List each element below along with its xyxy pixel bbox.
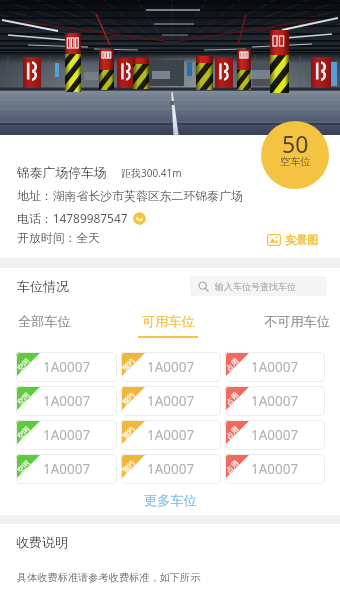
button[interactable]: 占用: [225, 352, 325, 382]
staticText: 1A0007: [147, 426, 195, 444]
button[interactable]: 预约: [121, 352, 221, 382]
button[interactable]: 预约: [121, 454, 221, 484]
staticText: 空闲: [16, 424, 31, 441]
staticText: 车位情况: [17, 278, 69, 294]
staticText: 全部车位: [18, 313, 71, 330]
staticText: 1A0007: [251, 426, 299, 444]
button[interactable]: 全部车位: [18, 306, 71, 339]
button[interactable]: 空闲: [16, 386, 117, 416]
staticText: 空闲: [16, 390, 31, 407]
staticText: 1A0007: [43, 392, 91, 410]
staticText: 空闲: [16, 356, 31, 373]
button[interactable]: 可用车位: [138, 306, 198, 339]
staticText: 占用: [225, 390, 240, 407]
staticText: 空车位: [280, 155, 311, 168]
staticText: 1A0007: [147, 460, 195, 478]
staticText: 不可用车位: [264, 313, 330, 330]
staticText: 占用: [225, 458, 240, 475]
staticText: 电话：14789987547: [17, 210, 128, 226]
staticText: 占用: [225, 356, 240, 373]
staticText: 预约: [121, 390, 136, 407]
staticText: 锦泰广场停车场: [17, 165, 107, 181]
button[interactable]: 空闲: [16, 352, 117, 382]
button[interactable]: 预约: [121, 420, 221, 450]
button[interactable]: 占用: [225, 454, 325, 484]
button[interactable]: 更多车位: [132, 490, 209, 511]
staticText: 1A0007: [43, 358, 91, 376]
button[interactable]: 拨打电话: [133, 212, 146, 225]
button[interactable]: 50: [261, 121, 329, 189]
button[interactable]: 预约: [121, 386, 221, 416]
staticText: 开放时间：全天: [17, 231, 101, 246]
button[interactable]: 占用: [225, 420, 325, 450]
staticText: 预约: [121, 356, 136, 373]
staticText: 地址：湖南省长沙市芙蓉区东二环锦泰广场: [17, 189, 243, 204]
staticText: 可用车位: [142, 313, 195, 330]
button[interactable]: 实景图: [265, 231, 320, 249]
button[interactable]: 空闲: [16, 420, 117, 450]
staticText: 1A0007: [147, 392, 195, 410]
button[interactable]: 输入车位号查找车位: [190, 276, 327, 296]
staticText: 50: [282, 128, 309, 159]
staticText: 1A0007: [251, 358, 299, 376]
staticText: 预约: [121, 458, 136, 475]
staticText: 1A0007: [251, 392, 299, 410]
staticText: 1A0007: [43, 460, 91, 478]
button[interactable]: 空闲: [16, 454, 117, 484]
staticText: 具体收费标准请参考收费标准，如下所示: [17, 571, 201, 584]
staticText: 1A0007: [43, 426, 91, 444]
button[interactable]: 不可用车位: [264, 306, 330, 339]
button[interactable]: 占用: [225, 386, 325, 416]
staticText: 空闲: [16, 458, 31, 475]
staticText: 实景图: [285, 233, 318, 247]
staticText: 1A0007: [147, 358, 195, 376]
staticText: 输入车位号查找车位: [215, 281, 296, 292]
staticText: 距我300.41m: [121, 166, 182, 180]
staticText: 预约: [121, 424, 136, 441]
staticText: 收费说明: [16, 534, 68, 550]
staticText: 占用: [225, 424, 240, 441]
staticText: 1A0007: [251, 460, 299, 478]
